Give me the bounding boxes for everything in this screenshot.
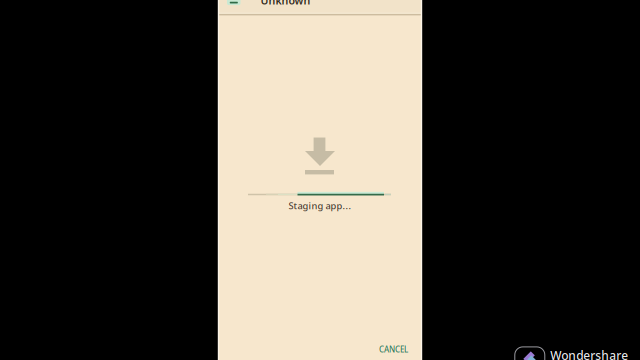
staticText: Staging app... [288, 199, 351, 212]
staticText: Wondershare [550, 347, 628, 360]
button[interactable]: App icon [227, 0, 240, 5]
staticText: Unknown [260, 0, 310, 8]
button[interactable]: CANCEL [373, 340, 414, 359]
staticText: CANCEL [379, 344, 408, 355]
